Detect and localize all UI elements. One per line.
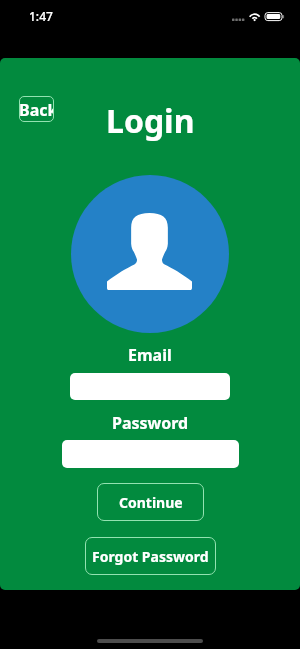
- button[interactable]: Continue: [97, 483, 204, 521]
- staticText: Back: [19, 99, 54, 121]
- button[interactable]: Back: [19, 96, 54, 122]
- staticText: Forgot Password: [92, 547, 209, 566]
- button[interactable]: Password input: [62, 440, 239, 468]
- staticText: Password: [112, 412, 189, 434]
- staticText: Continue: [119, 493, 183, 512]
- staticText: 1:47: [29, 8, 53, 24]
- staticText: Email: [128, 344, 172, 366]
- button[interactable]: Email input: [70, 373, 230, 400]
- button[interactable]: Forgot Password: [85, 537, 216, 575]
- staticText: Login: [106, 99, 195, 143]
